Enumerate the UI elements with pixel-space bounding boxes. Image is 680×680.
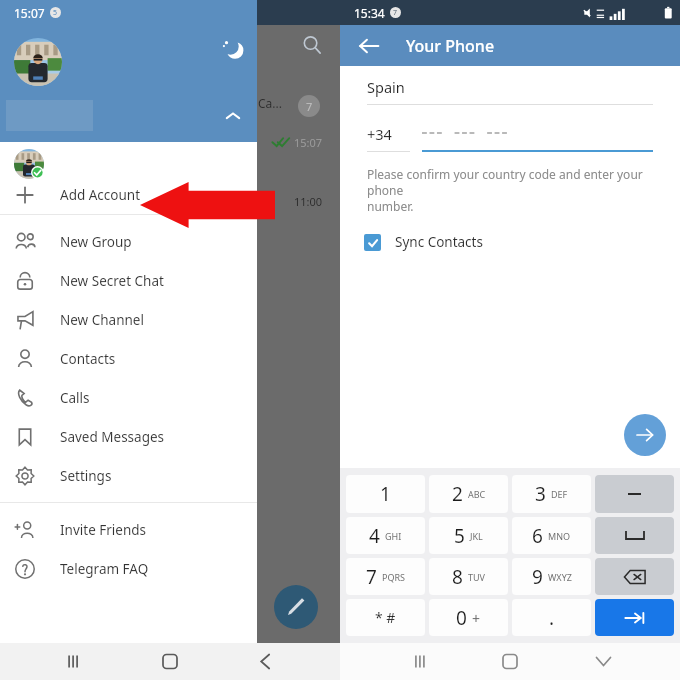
staticText: 15:34 bbox=[354, 5, 385, 21]
staticText: + bbox=[472, 609, 481, 628]
button[interactable]: Back bbox=[356, 33, 382, 59]
staticText: Settings bbox=[60, 467, 112, 485]
staticText: +34 bbox=[367, 124, 392, 144]
button[interactable]: Backspace bbox=[595, 558, 674, 595]
staticText: Contacts bbox=[60, 350, 116, 368]
staticText: New Secret Chat bbox=[60, 272, 164, 290]
staticText: ABC bbox=[468, 488, 486, 500]
button[interactable]: 7 bbox=[346, 558, 425, 595]
button[interactable]: New Secret Chat bbox=[0, 261, 257, 300]
button[interactable]: . bbox=[512, 599, 591, 636]
button[interactable]: Dash bbox=[595, 475, 674, 513]
button[interactable]: Add Account bbox=[0, 175, 257, 214]
button[interactable]: Saved Messages bbox=[0, 417, 257, 456]
button[interactable]: Collapse accounts bbox=[220, 103, 246, 129]
staticText: Add Account bbox=[60, 186, 141, 204]
staticText: MNO bbox=[548, 530, 571, 542]
staticText: 1 bbox=[380, 481, 391, 507]
staticText: PQRS bbox=[382, 571, 406, 583]
button[interactable]: 4 bbox=[346, 517, 425, 554]
staticText: DEF bbox=[551, 488, 568, 500]
staticText: . bbox=[549, 605, 555, 631]
staticText: Your Phone bbox=[406, 35, 495, 57]
staticText: New Group bbox=[60, 233, 132, 251]
button[interactable]: New message bbox=[274, 585, 318, 629]
staticText: Calls bbox=[60, 389, 90, 407]
staticText: New Channel bbox=[60, 311, 144, 329]
staticText: 7 bbox=[393, 8, 398, 18]
button[interactable]: * # bbox=[346, 599, 425, 636]
button[interactable]: 9 bbox=[512, 558, 591, 595]
button[interactable]: Profile photo bbox=[14, 38, 62, 86]
staticText: GHI bbox=[385, 530, 402, 542]
staticText: 0 bbox=[456, 605, 467, 631]
button[interactable]: 5 bbox=[429, 517, 508, 554]
button[interactable]: Next bbox=[624, 414, 666, 456]
button[interactable]: 0 bbox=[429, 599, 508, 636]
button[interactable]: 2 bbox=[429, 475, 508, 513]
button[interactable]: 1 bbox=[346, 475, 425, 513]
staticText: Invite Friends bbox=[60, 521, 147, 539]
button[interactable]: Sync Contacts bbox=[340, 228, 680, 256]
staticText: * # bbox=[375, 608, 396, 627]
button[interactable]: Telegram FAQ bbox=[0, 549, 257, 588]
staticText: Telegram FAQ bbox=[60, 560, 149, 578]
button[interactable] bbox=[422, 116, 653, 152]
staticText: 5 bbox=[53, 8, 58, 18]
button[interactable]: 3 bbox=[512, 475, 591, 513]
staticText: Spain bbox=[367, 77, 405, 97]
staticText: WXYZ bbox=[548, 571, 572, 583]
staticText: 7 bbox=[366, 564, 377, 590]
staticText: 3 bbox=[535, 481, 546, 507]
staticText: Saved Messages bbox=[60, 428, 165, 446]
staticText: Please confirm your country code and ent… bbox=[367, 166, 680, 214]
staticText: 6 bbox=[532, 523, 543, 549]
staticText: 2 bbox=[452, 481, 463, 507]
button[interactable]: Search bbox=[300, 33, 324, 57]
button[interactable]: Calls bbox=[0, 378, 257, 417]
staticText: 7 bbox=[306, 99, 313, 114]
staticText: 5 bbox=[454, 523, 465, 549]
staticText: 9 bbox=[532, 564, 543, 590]
button[interactable]: +34 bbox=[340, 116, 410, 152]
staticText: 15:07 bbox=[14, 5, 45, 21]
staticText: Ca... bbox=[258, 95, 282, 111]
staticText: 8 bbox=[452, 564, 463, 590]
staticText: 4 bbox=[369, 523, 380, 549]
staticText: 11:00 bbox=[294, 194, 323, 209]
button[interactable]: Spain bbox=[340, 69, 680, 105]
button[interactable]: Enter bbox=[595, 599, 674, 636]
button[interactable]: 6 bbox=[512, 517, 591, 554]
button[interactable]: 8 bbox=[429, 558, 508, 595]
staticText: 15:07 bbox=[294, 135, 323, 150]
button[interactable]: Contacts bbox=[0, 339, 257, 378]
button[interactable]: New Channel bbox=[0, 300, 257, 339]
button[interactable]: Space bbox=[595, 517, 674, 554]
button[interactable]: Settings bbox=[0, 456, 257, 495]
staticText: TUV bbox=[468, 571, 485, 583]
button[interactable]: Invite Friends bbox=[0, 510, 257, 549]
button[interactable]: New Group bbox=[0, 222, 257, 261]
staticText: Sync Contacts bbox=[395, 233, 483, 251]
button[interactable]: Night mode bbox=[220, 37, 246, 63]
staticText: JKL bbox=[470, 530, 483, 542]
